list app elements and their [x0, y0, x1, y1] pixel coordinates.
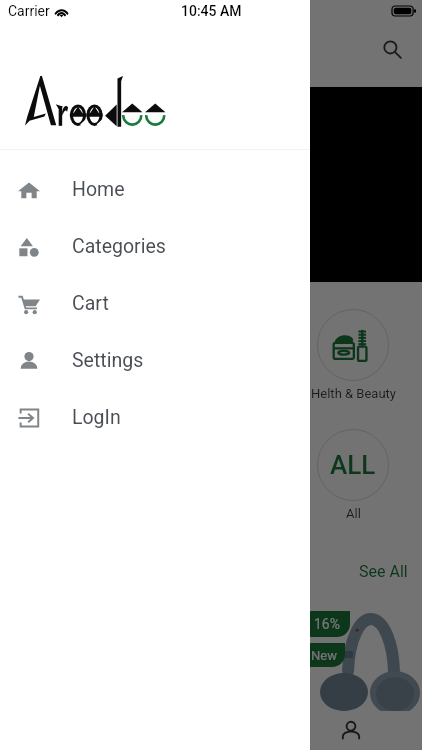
staticText: See All: [359, 562, 408, 581]
staticText: LogIn: [72, 406, 121, 429]
button[interactable]: Home: [97, 309, 217, 401]
button[interactable]: Categories: [0, 218, 310, 275]
button[interactable]: Search: [372, 29, 412, 69]
button[interactable]: Fashion: [0, 309, 119, 401]
staticText: Categories: [72, 235, 166, 258]
staticText: Settings: [72, 349, 144, 372]
staticText: 16%: [314, 616, 340, 632]
button[interactable]: 16%: [303, 597, 422, 711]
button[interactable]: Electronics: [195, 309, 315, 401]
button[interactable]: Settings: [0, 332, 310, 389]
button[interactable]: Sports: [195, 429, 315, 521]
button[interactable]: Home: [0, 161, 310, 218]
button[interactable]: [0, 0, 422, 750]
staticText: Carrier: [8, 3, 50, 19]
button[interactable]: ALL: [293, 429, 413, 521]
button[interactable]: Helth & Beauty: [293, 309, 413, 401]
staticText: Cart: [72, 292, 109, 315]
staticText: ALL: [330, 450, 376, 480]
button[interactable]: See All: [355, 556, 411, 586]
staticText: 10:45 AM: [181, 3, 242, 19]
staticText: All: [346, 506, 361, 521]
button[interactable]: LogIn: [0, 389, 310, 446]
staticText: Home: [72, 178, 125, 201]
staticText: New: [311, 648, 337, 663]
button[interactable]: Cart: [0, 275, 310, 332]
staticText: Helth & Beauty: [311, 386, 396, 401]
button[interactable]: Profile: [329, 711, 373, 750]
